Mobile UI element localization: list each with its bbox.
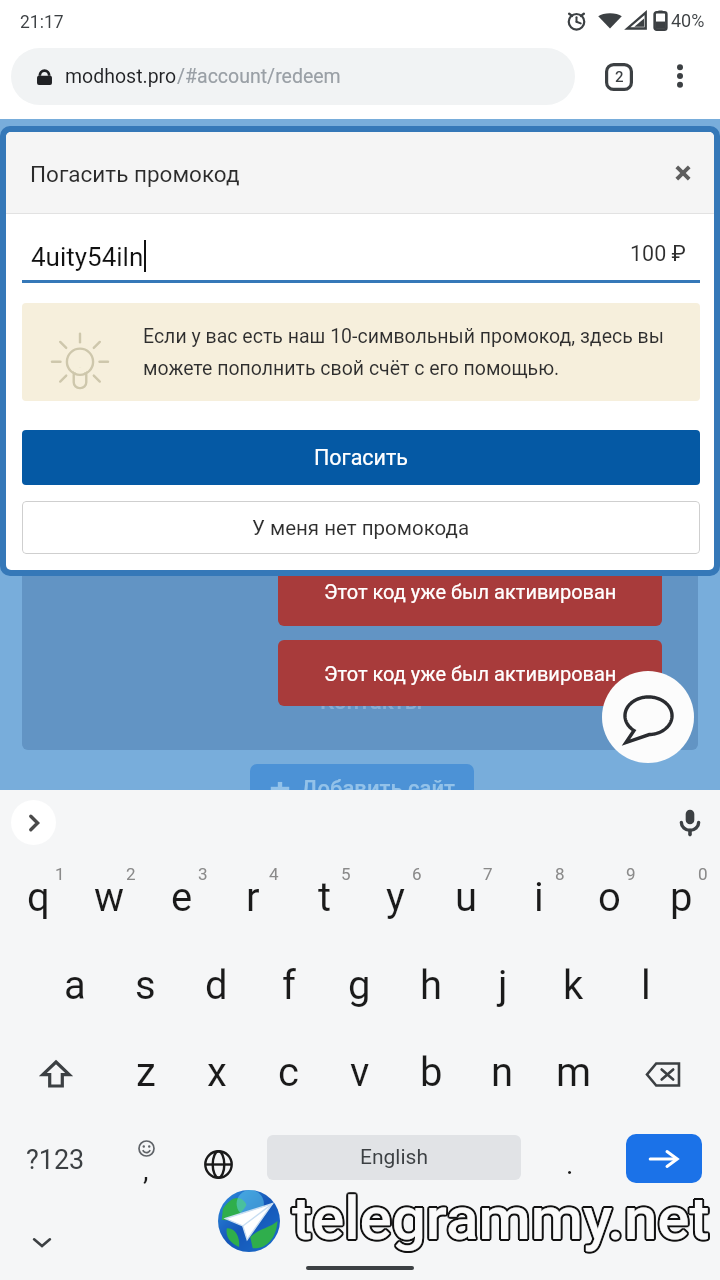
staticText: 2 — [615, 68, 624, 86]
staticText: r — [246, 874, 260, 921]
staticText: telegrammy.net — [294, 1182, 712, 1252]
staticText: 1 — [55, 864, 65, 884]
button[interactable]: w — [74, 853, 145, 941]
staticText: 2 — [126, 864, 136, 884]
button[interactable]: g — [324, 941, 395, 1029]
button[interactable]: z — [110, 1028, 181, 1116]
staticText: telegrammy.net — [294, 1184, 712, 1254]
button[interactable]: , — [110, 1124, 182, 1204]
button[interactable]: У меня нет промокода — [22, 501, 700, 554]
button[interactable]: m — [538, 1028, 609, 1116]
staticText: a — [64, 962, 86, 1009]
button[interactable]: Enter — [626, 1134, 702, 1183]
staticText: b — [420, 1049, 443, 1096]
staticText: telegrammy.net — [290, 1182, 708, 1252]
button[interactable]: q — [3, 853, 74, 941]
button[interactable]: a — [39, 941, 110, 1029]
staticText: telegrammy.net — [293, 1181, 711, 1251]
staticText: k — [563, 962, 584, 1009]
staticText: Контакты — [320, 689, 423, 715]
staticText: w — [94, 874, 125, 921]
button[interactable]: Backspace — [627, 1030, 699, 1118]
button[interactable]: Chat — [602, 671, 694, 763]
button[interactable]: n — [467, 1028, 538, 1116]
button[interactable]: j — [467, 941, 538, 1029]
button[interactable]: Этот код уже был активирован — [278, 640, 662, 706]
button[interactable]: i — [503, 853, 574, 941]
staticText: Погасить промокод — [30, 161, 240, 187]
button[interactable]: u — [431, 853, 502, 941]
staticText: 3 — [198, 864, 208, 884]
staticText: telegrammy.net — [292, 1182, 710, 1252]
staticText: telegrammy.net — [293, 1182, 711, 1252]
staticText: telegrammy.net — [293, 1183, 711, 1253]
staticText: telegrammy.net — [290, 1184, 708, 1254]
staticText: telegrammy.net — [293, 1184, 711, 1254]
staticText: telegrammy.net — [293, 1185, 711, 1255]
button[interactable]: Этот код уже был активирован — [278, 556, 662, 626]
button[interactable]: ?123 — [3, 1120, 107, 1200]
staticText: telegrammy.net — [294, 1183, 712, 1253]
staticText: Этот код уже был активирован — [324, 662, 617, 685]
staticText: Если у вас есть наш 10-символьный промок… — [143, 325, 664, 348]
button[interactable]: l — [610, 941, 681, 1029]
staticText: telegrammy.net — [292, 1181, 710, 1251]
button[interactable]: Погасить — [22, 430, 700, 485]
button[interactable]: Hide keyboard — [14, 1214, 70, 1270]
button[interactable]: Voice input — [668, 800, 712, 844]
button[interactable]: x — [181, 1028, 252, 1116]
button[interactable]: English — [267, 1135, 521, 1180]
button[interactable]: v — [324, 1028, 395, 1116]
staticText: v — [350, 1049, 370, 1096]
staticText: u — [455, 874, 478, 921]
button[interactable]: p — [646, 853, 717, 941]
staticText: telegrammy.net — [291, 1181, 709, 1251]
staticText: 7 — [483, 864, 493, 884]
staticText: , — [143, 1154, 149, 1187]
staticText: 40% — [671, 10, 705, 31]
staticText: Этот код уже был активирован — [324, 580, 617, 603]
staticText: 4 — [269, 864, 279, 884]
button[interactable]: o — [574, 853, 645, 941]
staticText: 100 ₽ — [630, 241, 686, 266]
staticText: 21:17 — [20, 12, 64, 33]
staticText: /#account/redeem — [177, 65, 341, 88]
button[interactable]: Change language — [182, 1124, 254, 1204]
button[interactable]: s — [110, 941, 181, 1029]
button[interactable]: c — [253, 1028, 324, 1116]
staticText: x — [207, 1049, 227, 1096]
button[interactable]: t — [289, 853, 360, 941]
button[interactable]: b — [396, 1028, 467, 1116]
button[interactable]: h — [396, 941, 467, 1029]
staticText: q — [27, 874, 50, 921]
staticText: e — [171, 874, 193, 921]
staticText: y — [386, 874, 405, 921]
staticText: j — [498, 962, 508, 1009]
button[interactable]: d — [181, 941, 252, 1029]
button[interactable]: f — [253, 941, 324, 1029]
staticText: ?123 — [26, 1144, 85, 1176]
staticText: telegrammy.net — [292, 1185, 710, 1255]
button[interactable]: modhost.pro — [11, 48, 575, 105]
button[interactable]: y — [360, 853, 431, 941]
button[interactable]: Close — [661, 151, 705, 195]
button[interactable]: . — [534, 1124, 606, 1204]
staticText: o — [598, 874, 621, 921]
button[interactable]: Tabs — [605, 63, 633, 91]
staticText: Погасить — [314, 445, 408, 470]
staticText: i — [534, 874, 544, 921]
button[interactable]: e — [146, 853, 217, 941]
button[interactable]: r — [217, 853, 288, 941]
staticText: 9 — [626, 864, 636, 884]
staticText: h — [420, 962, 443, 1009]
staticText: telegrammy.net — [291, 1183, 709, 1253]
button[interactable]: Expand suggestions — [11, 800, 56, 845]
staticText: telegrammy.net — [292, 1183, 710, 1253]
button[interactable]: More options — [662, 58, 698, 94]
staticText: t — [318, 874, 332, 921]
staticText: s — [135, 962, 156, 1009]
button[interactable]: Shift — [20, 1030, 92, 1118]
button[interactable]: k — [538, 941, 609, 1029]
button[interactable]: Добавить сайт — [250, 764, 474, 814]
staticText: n — [491, 1049, 514, 1096]
